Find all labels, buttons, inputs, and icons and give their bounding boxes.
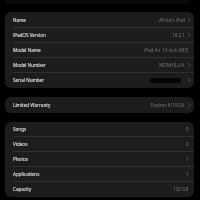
staticText: 128 GB — [173, 186, 189, 192]
staticText: Limited Warranty — [13, 102, 51, 108]
button[interactable]: Applications — [5, 167, 194, 182]
staticText: Songs — [13, 126, 27, 132]
staticText: Applications — [13, 171, 40, 177]
staticText: iPadOS Version — [13, 32, 46, 38]
staticText: 1 — [186, 171, 189, 177]
button[interactable]: Model Name — [5, 43, 194, 58]
staticText: Capacity — [13, 186, 32, 192]
button[interactable]: Capacity — [5, 182, 194, 197]
staticText: Model Number — [13, 62, 46, 68]
staticText: Africa's iPad — [159, 17, 185, 23]
staticText: 0 — [186, 126, 189, 132]
staticText: 18.2.1 — [172, 32, 185, 38]
staticText: Model Name — [13, 47, 41, 53]
staticText: iPad Air 13-inch (M3) — [144, 47, 189, 53]
staticText: Photos — [13, 156, 29, 162]
button[interactable]: Songs — [5, 122, 194, 137]
staticText: Name — [13, 17, 26, 23]
button[interactable]: Videos — [5, 137, 194, 152]
button[interactable]: iPadOS Version — [5, 28, 194, 43]
button[interactable]: Limited Warranty — [5, 97, 194, 113]
staticText: Expires 6/19/26 — [151, 102, 185, 108]
staticText: 0 — [186, 141, 189, 147]
staticText: MDNHILL/A — [159, 62, 185, 68]
staticText: 1 — [186, 156, 189, 162]
button[interactable]: Model Number — [5, 58, 194, 73]
staticText: Videos — [13, 141, 28, 147]
button[interactable]: Name — [5, 12, 194, 28]
button[interactable]: Serial Number — [5, 73, 194, 88]
button[interactable]: Photos — [5, 152, 194, 167]
staticText: Serial Number — [13, 77, 45, 83]
